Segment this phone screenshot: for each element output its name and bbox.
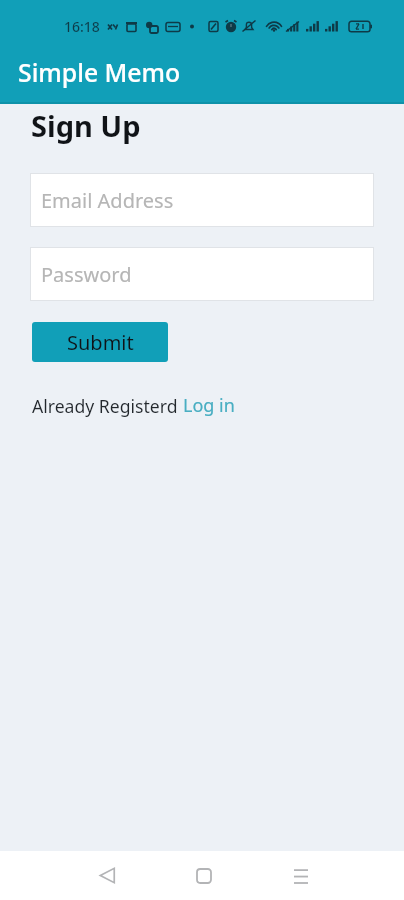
button[interactable]: Submit — [32, 322, 168, 362]
staticText: Already Registerd — [32, 394, 178, 418]
button[interactable]: Recent apps — [277, 852, 324, 899]
staticText: Sign Up — [31, 106, 141, 145]
staticText: Email Address — [41, 187, 174, 214]
staticText: 16:18 — [64, 17, 100, 36]
button[interactable]: Log in — [183, 393, 235, 418]
button[interactable]: Back — [84, 852, 131, 899]
button[interactable]: Password — [30, 247, 374, 301]
button[interactable]: Email Address — [30, 173, 374, 227]
staticText: Password — [41, 261, 132, 288]
staticText: Submit — [67, 329, 134, 356]
button[interactable]: Home — [180, 852, 227, 899]
staticText: Simple Memo — [18, 55, 181, 89]
